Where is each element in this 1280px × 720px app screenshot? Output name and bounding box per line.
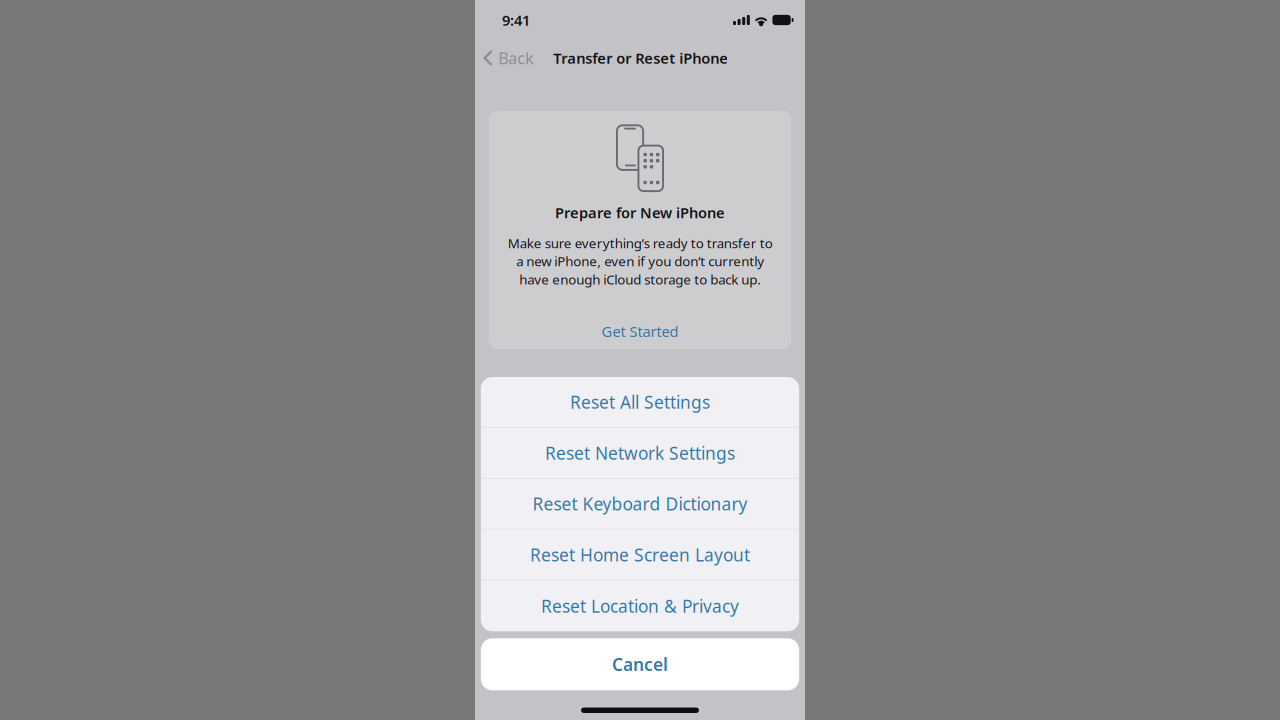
staticText: Reset Keyboard Dictionary [532,492,747,515]
staticText: Reset Home Screen Layout [530,543,750,566]
staticText: Cancel [612,653,668,676]
staticText: Reset Location & Privacy [541,594,739,617]
staticText: 9:41 [502,10,530,30]
button[interactable]: Back [476,41,541,75]
staticText: Back [498,47,534,69]
button[interactable]: Reset Network Settings [481,428,799,479]
button[interactable]: Get Started [579,313,700,349]
staticText: Make sure everything’s ready to transfer… [507,234,772,288]
button[interactable]: Reset All Settings [481,377,799,428]
button[interactable]: Cancel [481,638,799,690]
staticText: Prepare for New iPhone [555,203,725,222]
button[interactable]: Reset Location & Privacy [481,581,799,631]
staticText: Reset All Settings [570,390,710,413]
staticText: Reset Network Settings [545,441,735,464]
button[interactable]: Reset Home Screen Layout [481,530,799,581]
staticText: Get Started [601,321,678,341]
button[interactable]: Reset Keyboard Dictionary [481,479,799,530]
staticText: Transfer or Reset iPhone [553,48,728,68]
